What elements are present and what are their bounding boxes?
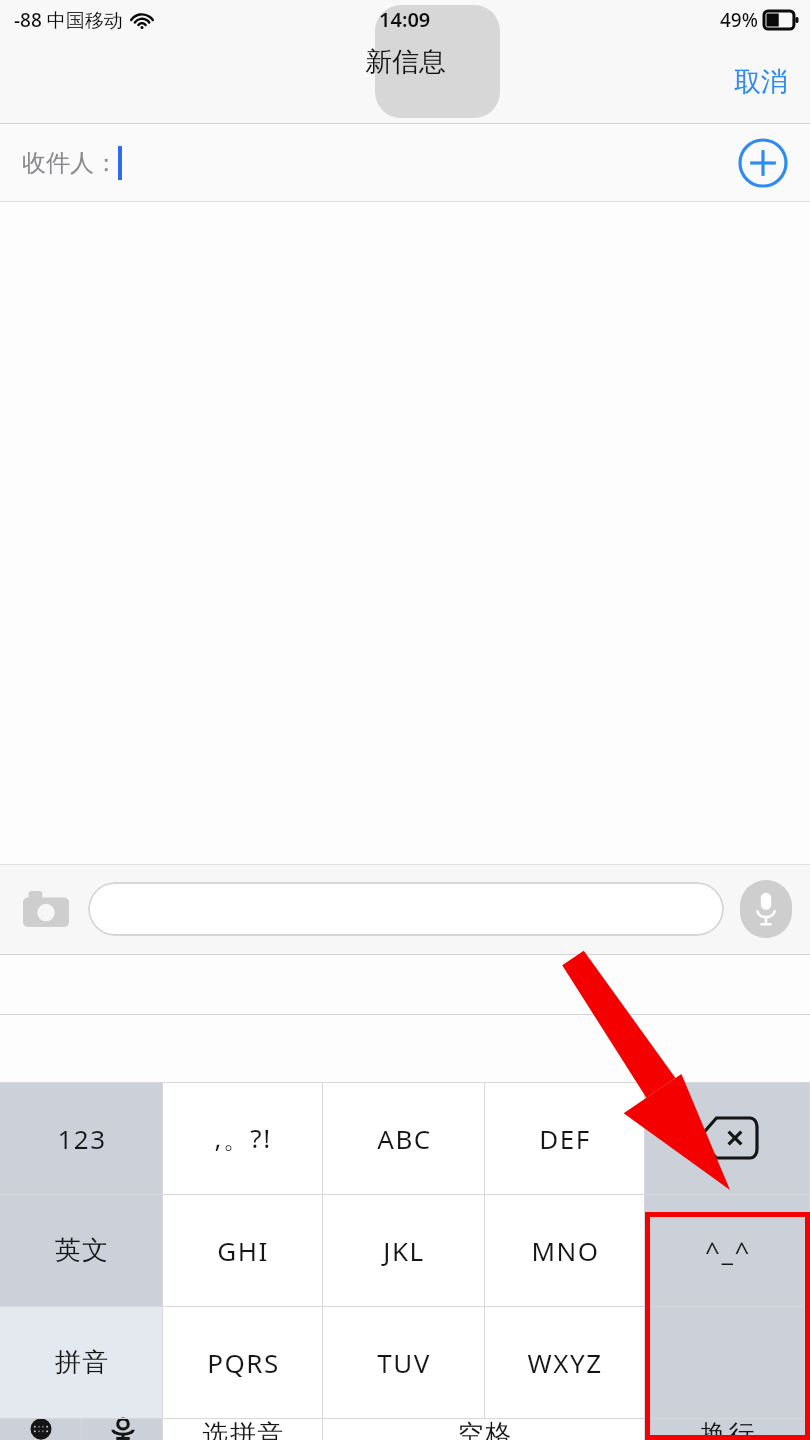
button[interactable]: Switch keyboard	[0, 1418, 82, 1440]
button[interactable]: PQRS	[163, 1306, 323, 1418]
staticText: 取消	[734, 65, 788, 99]
staticText: 新信息	[365, 45, 446, 79]
button[interactable]: 选拼音	[163, 1418, 323, 1440]
button[interactable]: Backspace	[645, 1082, 810, 1194]
staticText: JKL	[383, 1233, 425, 1268]
staticText: DEF	[539, 1121, 591, 1156]
button[interactable]: Dictation	[82, 1418, 163, 1440]
staticText: GHI	[217, 1233, 269, 1268]
button[interactable]: GHI	[163, 1194, 323, 1306]
staticText: 49%	[720, 7, 758, 33]
button[interactable]: ^_^	[645, 1194, 810, 1306]
button[interactable]	[88, 882, 724, 936]
staticText: ^_^	[705, 1233, 751, 1268]
button[interactable]: 拼音	[0, 1306, 163, 1418]
button[interactable]: JKL	[323, 1194, 485, 1306]
staticText: TUV	[377, 1345, 431, 1380]
staticText: ,。?!	[214, 1120, 272, 1156]
staticText: 123	[57, 1121, 107, 1156]
button[interactable]: TUV	[323, 1306, 485, 1418]
staticText: 收件人：	[22, 148, 118, 178]
button[interactable]: 取消	[722, 55, 800, 109]
button[interactable]: 换行	[645, 1418, 810, 1440]
button[interactable]: Camera	[18, 881, 74, 937]
button[interactable]: ABC	[323, 1082, 485, 1194]
staticText: 英文	[54, 1234, 109, 1267]
staticText: ABC	[377, 1121, 432, 1156]
staticText: 拼音	[54, 1346, 109, 1379]
staticText: WXYZ	[527, 1345, 603, 1380]
button[interactable]: 123	[0, 1082, 163, 1194]
staticText: 14:09	[379, 6, 431, 33]
staticText: PQRS	[207, 1345, 280, 1380]
staticText: 选拼音	[202, 1418, 285, 1440]
staticText: 空格	[457, 1418, 512, 1440]
button[interactable]: ,。?!	[163, 1082, 323, 1194]
button[interactable]: 英文	[0, 1194, 163, 1306]
button[interactable]: DEF	[485, 1082, 645, 1194]
button[interactable]: 空格	[323, 1418, 645, 1440]
button[interactable]: WXYZ	[485, 1306, 645, 1418]
button[interactable]: MNO	[485, 1194, 645, 1306]
button[interactable]: Voice input	[740, 880, 792, 938]
button[interactable]: Add contact	[738, 138, 788, 188]
staticText: -88 中国移动	[14, 7, 123, 33]
button[interactable]	[645, 1306, 810, 1418]
staticText: 换行	[700, 1418, 755, 1440]
staticText: MNO	[531, 1233, 600, 1268]
